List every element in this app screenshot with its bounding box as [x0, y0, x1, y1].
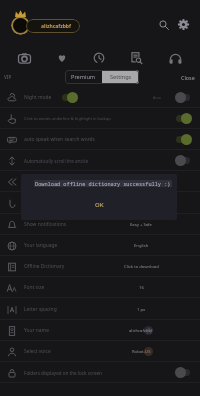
button[interactable]: Settings: [174, 15, 193, 34]
button[interactable]: Your name: [0, 320, 200, 341]
staticText: 1 px: [137, 307, 146, 313]
staticText: alizhcafzbbf: [41, 23, 71, 30]
staticText: Your language: [24, 242, 58, 249]
staticText: Translate selected text: [24, 178, 76, 185]
staticText: OK: [95, 201, 104, 209]
staticText: Robot-US: [132, 349, 151, 355]
staticText: Click to words underline & highlight in …: [24, 116, 111, 122]
staticText: Settings: [110, 73, 132, 81]
button[interactable]: Call assistance: [0, 193, 200, 214]
staticText: Font size: [24, 284, 45, 291]
button[interactable]: Font size: [0, 277, 200, 298]
button[interactable]: Documents: [118, 44, 156, 68]
button[interactable]: Show notifications: [0, 214, 200, 235]
button[interactable]: Night mode: [0, 87, 200, 108]
button[interactable]: Click to words underline & highlight in …: [0, 108, 200, 129]
staticText: Automatically scroll the article: [24, 158, 89, 164]
button[interactable]: VIP: [4, 74, 12, 80]
button[interactable]: Your language: [0, 235, 200, 256]
staticText: Click to download: [124, 264, 159, 270]
button[interactable]: OK: [89, 200, 110, 210]
staticText: Night mode: [24, 94, 52, 101]
staticText: Auto: [153, 95, 161, 100]
staticText: Select voice: [24, 348, 51, 355]
staticText: auto speak when search words: [24, 136, 95, 143]
staticText: Show notifications: [24, 221, 67, 228]
staticText: Easy + Safe: [130, 222, 152, 228]
staticText: Offline Dictionary: [24, 263, 65, 270]
staticText: Premium: [71, 73, 96, 81]
button[interactable]: Audio: [156, 44, 194, 68]
button[interactable]: Premium: [65, 70, 102, 84]
button[interactable]: Folders displayed on the lock screen: [0, 362, 200, 383]
staticText: Letter spacing: [24, 306, 57, 313]
staticText: Your name: [24, 327, 49, 334]
button[interactable]: Search: [154, 15, 173, 34]
button[interactable]: Close: [181, 74, 195, 81]
button[interactable]: History: [80, 44, 118, 68]
staticText: 16: [139, 285, 144, 291]
button[interactable]: Favorites: [43, 44, 80, 68]
button[interactable]: Profile: [11, 16, 30, 35]
button[interactable]: alizhcafzbbf: [26, 19, 80, 33]
button[interactable]: Offline Dictionary: [0, 256, 200, 277]
staticText: Download offline dictionary successfully…: [35, 180, 171, 187]
button[interactable]: auto speak when search words: [0, 129, 200, 150]
button[interactable]: Letter spacing: [0, 299, 200, 320]
button[interactable]: Camera: [6, 44, 43, 68]
button[interactable]: Select voice: [0, 341, 200, 362]
button[interactable]: Settings: [102, 70, 139, 84]
button[interactable]: Automatically scroll the article: [0, 150, 200, 171]
staticText: Folders displayed on the lock screen: [24, 370, 102, 376]
button[interactable]: Translate selected text: [0, 171, 200, 192]
staticText: English: [134, 243, 149, 249]
staticText: alizhcafzbbf: [129, 328, 153, 334]
